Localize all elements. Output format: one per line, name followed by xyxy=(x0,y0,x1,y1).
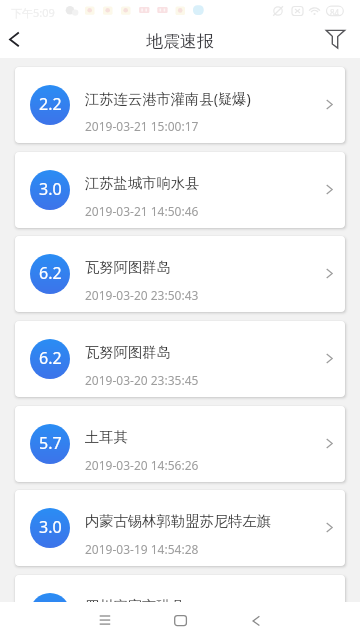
staticText: 四川宜宾市珙县 xyxy=(85,597,186,615)
button[interactable]: Back xyxy=(236,602,276,640)
staticText: 3.0 xyxy=(39,178,62,200)
button[interactable]: Recent apps xyxy=(85,602,125,640)
staticText: 2019-03-19 14:54:28 xyxy=(85,541,199,557)
staticText: 江苏连云港市灌南县(疑爆) xyxy=(85,89,251,109)
staticText: 地震速报 xyxy=(146,31,214,52)
staticText: 2019-03-20 23:35:45 xyxy=(85,372,199,388)
staticText: 2019-03-21 14:50:46 xyxy=(85,203,199,219)
staticText: 瓦努阿图群岛 xyxy=(85,258,171,276)
button[interactable]: Home xyxy=(160,602,200,640)
staticText: 5.7 xyxy=(39,432,62,454)
staticText: 2019-03-20 23:50:43 xyxy=(85,287,199,303)
staticText: 2019-03-21 15:00:17 xyxy=(85,118,199,134)
button[interactable]: 5.7 xyxy=(15,406,345,482)
staticText: 2.2 xyxy=(39,93,62,115)
staticText: 2019-03-20 14:56:26 xyxy=(85,457,199,473)
staticText: 3.0 xyxy=(39,516,62,538)
staticText: 土耳其 xyxy=(85,428,128,446)
staticText: 84 xyxy=(330,7,340,18)
button[interactable]: 6.2 xyxy=(15,321,345,397)
button[interactable]: 6.2 xyxy=(15,236,345,312)
button[interactable]: Back xyxy=(0,24,34,58)
staticText: 4.5 xyxy=(39,601,62,623)
button[interactable]: 3.0 xyxy=(15,152,345,228)
button[interactable]: Filter xyxy=(326,24,360,58)
button[interactable]: 4.5 xyxy=(15,575,345,640)
staticText: 瓦努阿图群岛 xyxy=(85,343,171,361)
staticText: 内蒙古锡林郭勒盟苏尼特左旗 xyxy=(85,512,271,530)
staticText: 6.2 xyxy=(39,347,62,369)
staticText: 6.2 xyxy=(39,262,62,284)
button[interactable]: 3.0 xyxy=(15,490,345,566)
button[interactable]: 2.2 xyxy=(15,67,345,143)
staticText: 下午5:09 xyxy=(11,5,55,20)
staticText: 江苏盐城市响水县 xyxy=(85,174,200,192)
